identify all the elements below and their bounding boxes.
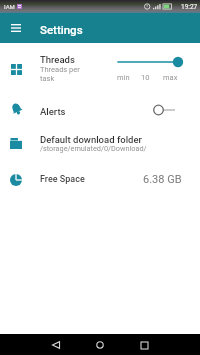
staticText: Threads per task [40,65,84,83]
button[interactable]: Recent apps [134,335,154,355]
staticText: Alerts [40,106,66,117]
staticText: Free Space [40,174,85,185]
staticText: max [163,73,178,82]
staticText: Threads [40,54,75,65]
button[interactable]: Threads [0,44,200,88]
staticText: 10 [141,73,150,82]
staticText: 19:27 [181,3,198,11]
button[interactable]: Default download folder [0,128,200,160]
button[interactable]: Alerts [0,96,200,124]
staticText: Settings [40,23,83,36]
staticText: Default download folder [40,134,142,145]
staticText: min [117,73,130,82]
button[interactable]: Free Space [0,164,200,192]
button[interactable]: Home [90,335,110,355]
staticText: /storage/emulated/0/Download/ [40,144,147,153]
button[interactable]: Back [46,335,66,355]
staticText: IAM [4,3,15,10]
button[interactable]: Open navigation menu [4,16,28,40]
staticText: 6.38 GB [143,173,182,186]
